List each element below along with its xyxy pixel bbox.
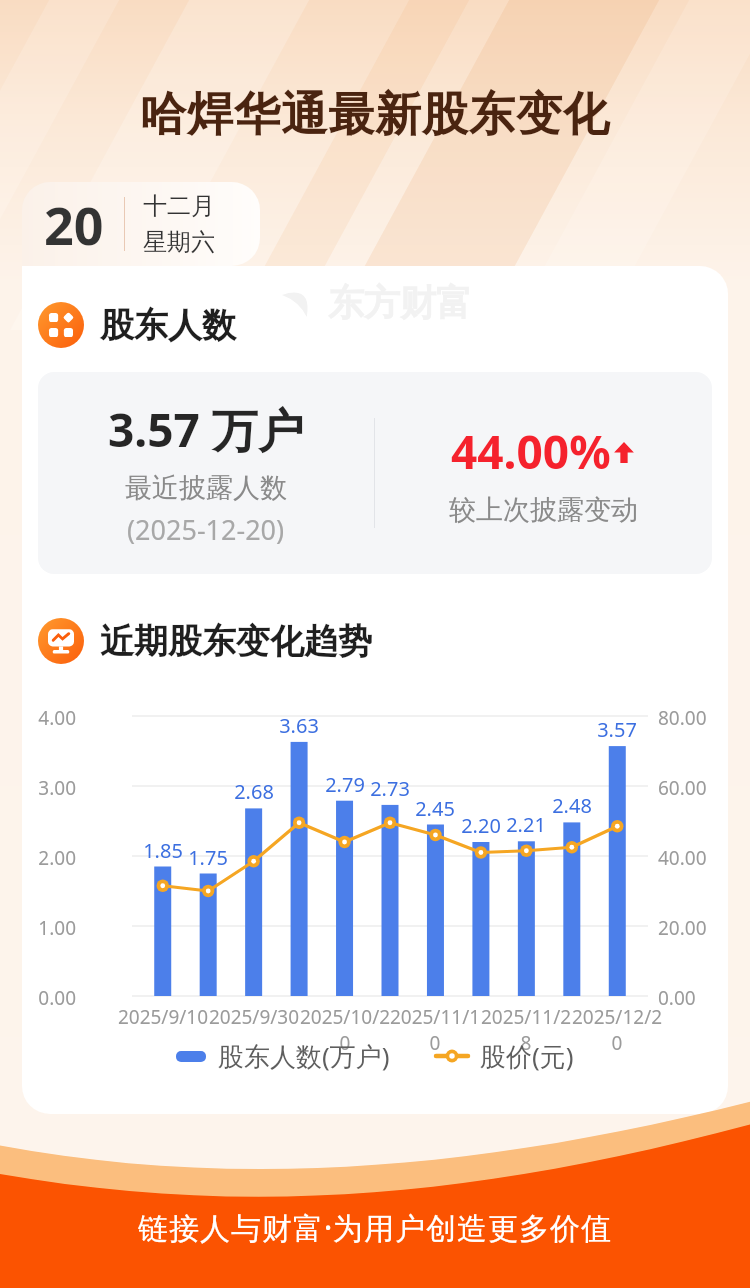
staticText: 2.79 (317, 771, 373, 798)
staticText: 2.68 (226, 778, 282, 805)
staticText: 2.73 (362, 775, 418, 802)
staticText: 3.63 (271, 712, 327, 739)
staticText: 1.85 (135, 837, 191, 864)
staticText: 3.57 万户 (108, 398, 304, 461)
staticText: 最近披露人数 (125, 471, 287, 505)
staticText: 3.00 (26, 775, 76, 801)
staticText: 2025/11/10 (385, 1004, 485, 1056)
staticText: 80.00 (658, 705, 724, 731)
staticText: 哈焊华通最新股东变化 (0, 86, 750, 144)
staticText: 3.57 (589, 716, 645, 743)
staticText: 0.00 (658, 985, 724, 1011)
button[interactable]: 股东人数(万户) (170, 1032, 396, 1080)
button[interactable]: 近期股东变化趋势 (38, 618, 84, 664)
staticText: 2025/10/20 (295, 1004, 395, 1056)
staticText: 链接人与财富·为用户创造更多价值 (0, 1207, 750, 1248)
staticText: 1.00 (26, 915, 76, 941)
staticText: 十二月 (143, 191, 215, 221)
staticText: 60.00 (658, 775, 724, 801)
staticText: (2025-12-20) (127, 511, 285, 548)
staticText: 股价(元) (480, 1038, 574, 1074)
button[interactable]: 股东人数 (38, 302, 84, 348)
staticText: 2025/9/10 (113, 1004, 213, 1030)
staticText: 股东人数 (100, 304, 236, 347)
staticText: 2.48 (544, 792, 600, 819)
staticText: 40.00 (658, 845, 724, 871)
staticText: 2.21 (498, 811, 554, 838)
staticText: 近期股东变化趋势 (100, 620, 372, 663)
button[interactable]: 股价(元) (430, 1032, 580, 1080)
staticText: 东方财富 (328, 280, 472, 325)
staticText: 44.00% (451, 420, 611, 483)
staticText: 20 (44, 189, 104, 260)
staticText: 2.20 (453, 812, 509, 839)
staticText: 0.00 (26, 985, 76, 1011)
staticText: 1.75 (180, 844, 236, 871)
staticText: 2025/12/20 (567, 1004, 667, 1056)
staticText: 20.00 (658, 915, 724, 941)
button[interactable]: 3.57 万户 (38, 372, 712, 574)
staticText: 2025/9/30 (204, 1004, 304, 1030)
staticText: 较上次披露变动 (449, 493, 638, 527)
staticText: 2025/11/28 (476, 1004, 576, 1056)
staticText: 股东人数(万户) (218, 1038, 390, 1074)
staticText: 4.00 (26, 705, 76, 731)
staticText: 2.45 (407, 795, 463, 822)
staticText: 2.00 (26, 845, 76, 871)
staticText: 星期六 (143, 227, 215, 257)
